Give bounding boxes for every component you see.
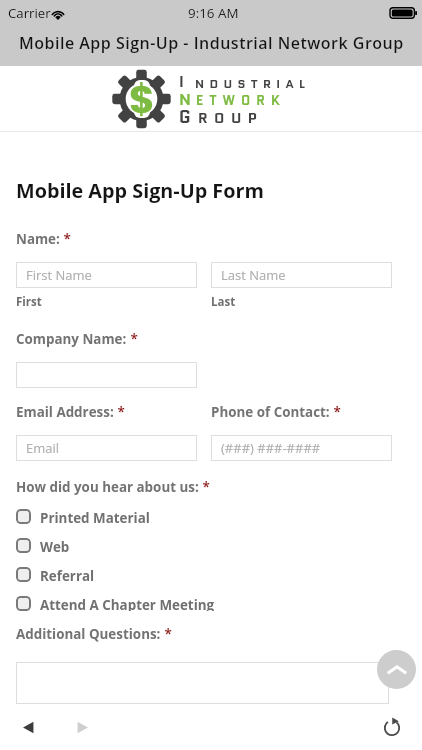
button[interactable]: Attend A Chapter Meeting [0, 596, 422, 611]
staticText: Phone of Contact: [211, 403, 330, 421]
staticText: Mobile App Sign-Up - Industrial Network … [19, 32, 404, 54]
staticText: Last Name [221, 266, 286, 284]
button[interactable]: Forward [60, 705, 104, 749]
staticText: ROUP [198, 107, 264, 128]
button[interactable]: Printed Material [0, 509, 422, 524]
staticText: ETWORK [196, 91, 286, 110]
staticText: * [114, 403, 125, 421]
button[interactable]: (###) ###-#### [211, 435, 392, 461]
staticText: Name: [16, 230, 60, 248]
staticText: * [199, 478, 210, 496]
staticText: Carrier [8, 4, 51, 22]
button[interactable]: First Name [16, 262, 197, 288]
button[interactable]: Reload [370, 705, 414, 749]
staticText: Last [211, 294, 236, 310]
button[interactable]: Scroll to top [377, 650, 416, 689]
staticText: Company Name: [16, 330, 127, 348]
staticText: Mobile App Sign-Up Form [16, 177, 264, 204]
staticText: I [179, 71, 190, 93]
staticText: * [127, 330, 138, 348]
staticText: Printed Material [40, 509, 150, 524]
staticText: First Name [26, 266, 92, 284]
staticText: Referral [40, 567, 95, 582]
staticText: Additional Questions: [16, 625, 161, 643]
button[interactable]: Web [0, 538, 422, 553]
staticText: * [330, 403, 341, 421]
staticText: How did you hear about us: [16, 478, 199, 496]
staticText: Email [26, 439, 60, 457]
staticText: (###) ###-#### [221, 439, 321, 457]
staticText: $ [129, 72, 155, 127]
staticText: N [179, 88, 197, 111]
button[interactable] [16, 362, 197, 388]
button[interactable]: Email [16, 435, 197, 461]
button[interactable]: Referral [0, 567, 422, 582]
staticText: * [161, 625, 172, 643]
button[interactable] [16, 662, 389, 704]
staticText: 9:16 AM [188, 4, 239, 22]
staticText: G [179, 104, 198, 129]
staticText: Web [40, 538, 70, 553]
staticText: First [16, 294, 211, 310]
button[interactable]: Back [6, 705, 50, 749]
staticText: Email Address: [16, 403, 114, 421]
staticText: NDUSTRIAL [195, 75, 311, 92]
button[interactable]: Last Name [211, 262, 392, 288]
staticText: Attend A Chapter Meeting [40, 596, 215, 611]
staticText: * [60, 230, 71, 248]
